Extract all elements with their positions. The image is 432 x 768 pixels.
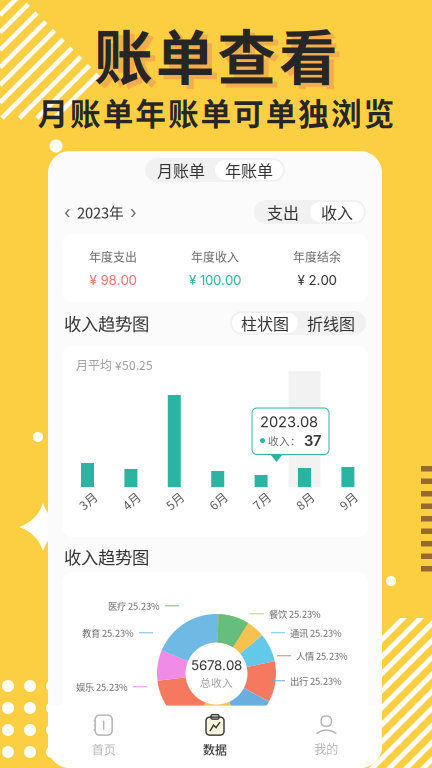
staticText: 6月 — [209, 492, 228, 510]
staticText: 月账单 — [157, 158, 205, 182]
staticText: 2023年 — [77, 201, 124, 223]
staticText: 账单查看 — [94, 11, 338, 96]
staticText: 收入： — [268, 433, 301, 448]
staticText: 7月 — [252, 492, 271, 510]
staticText: 9月 — [339, 492, 358, 510]
staticText: 4月 — [122, 492, 141, 510]
staticText: 我的 — [314, 740, 338, 757]
staticText: 年度结余 — [293, 248, 341, 265]
button[interactable]: 数据 — [159, 714, 271, 758]
staticText: 年度支出 — [89, 248, 137, 265]
button[interactable]: 月账单 — [147, 160, 215, 180]
button[interactable]: 收入 — [310, 202, 364, 222]
staticText: 通讯 25.23% — [290, 626, 342, 639]
button[interactable]: 首页 — [48, 714, 159, 758]
staticText: 餐饮 25.23% — [269, 607, 321, 620]
staticText: 医疗 25.23% — [108, 599, 160, 612]
staticText: 37 — [304, 432, 321, 449]
staticText: 总收入 — [200, 674, 233, 690]
staticText: 折线图 — [307, 311, 355, 335]
staticText: 账单查看 — [99, 15, 343, 100]
button[interactable]: 支出 — [256, 202, 310, 222]
staticText: 首页 — [92, 741, 116, 758]
staticText: › — [130, 201, 137, 222]
button[interactable]: 我的 — [271, 714, 382, 757]
staticText: ‹ — [64, 201, 71, 222]
button[interactable]: ‹ — [64, 200, 137, 224]
staticText: ¥ 98.00 — [89, 272, 136, 288]
staticText: 3月 — [78, 492, 97, 510]
staticText: 2023.08 — [260, 413, 318, 431]
button[interactable]: 柱状图 — [232, 313, 298, 333]
staticText: ¥ 100.00 — [189, 272, 241, 288]
staticText: 人情 25.23% — [296, 649, 348, 662]
staticText: ¥ 2.00 — [297, 272, 336, 288]
staticText: 月账单年账单可单独浏览 — [37, 90, 394, 134]
staticText: 出行 25.23% — [290, 674, 342, 687]
staticText: 收入 — [321, 200, 353, 224]
staticText: 支出 — [267, 200, 299, 224]
staticText: 收入趋势图 — [64, 544, 149, 569]
button[interactable]: 折线图 — [298, 313, 364, 333]
staticText: 月平均 ¥50.25 — [76, 356, 153, 373]
staticText: 年账单 — [225, 158, 273, 182]
staticText: 数据 — [203, 741, 227, 758]
staticText: 收入趋势图 — [64, 310, 149, 336]
staticText: 教育 25.23% — [82, 626, 134, 639]
staticText: 8月 — [295, 492, 314, 510]
staticText: 年度收入 — [191, 248, 239, 265]
button[interactable]: 年账单 — [215, 160, 283, 180]
staticText: 柱状图 — [241, 311, 289, 335]
staticText: 5月 — [165, 492, 184, 510]
staticText: 娱乐 25.23% — [76, 680, 128, 693]
staticText: 5678.08 — [191, 657, 242, 673]
